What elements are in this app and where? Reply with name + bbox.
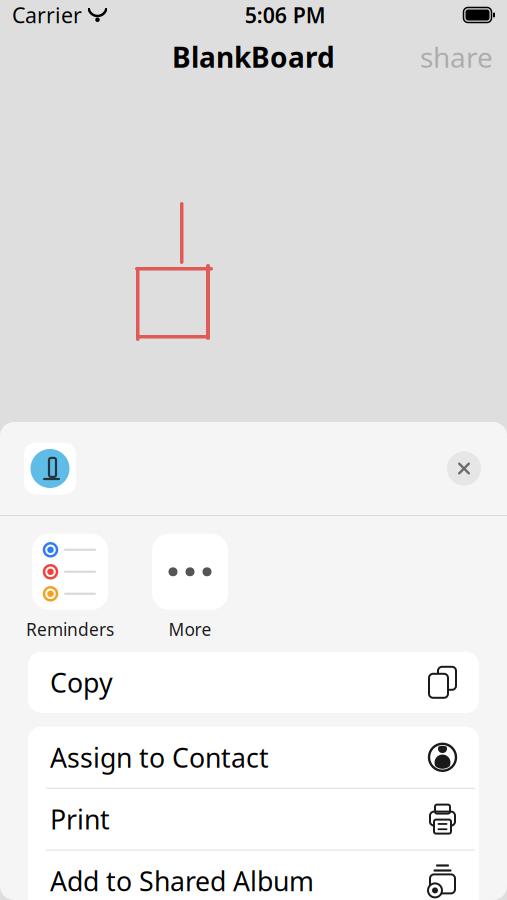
staticText: Add to Shared Album <box>50 863 314 899</box>
staticText: Reminders <box>26 618 114 641</box>
button[interactable]: Copy <box>28 652 479 713</box>
staticText: Copy <box>50 665 113 700</box>
staticText: Print <box>50 801 110 837</box>
staticText: Carrier <box>12 1 82 29</box>
staticText: Assign to Contact <box>50 740 269 775</box>
staticText: share <box>420 38 493 76</box>
button[interactable]: Assign to Contact <box>28 727 479 788</box>
staticText: BlankBoard <box>172 38 335 76</box>
button[interactable]: Close <box>440 444 488 492</box>
staticText: 5:06 PM <box>245 1 326 29</box>
button[interactable]: More <box>152 534 228 641</box>
button[interactable]: Print <box>28 789 479 850</box>
button[interactable]: share <box>406 30 507 84</box>
staticText: More <box>168 618 211 641</box>
button[interactable]: Add to Shared Album <box>28 850 479 900</box>
button[interactable]: Reminders <box>26 534 114 641</box>
